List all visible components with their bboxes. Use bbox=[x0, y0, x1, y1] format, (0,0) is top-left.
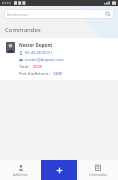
staticText: Total : bbox=[19, 64, 31, 69]
staticText: Rechercher bbox=[7, 12, 105, 17]
staticText: 06.45.28.00.01 bbox=[25, 50, 53, 55]
button[interactable]: Ajouter bbox=[41, 160, 77, 180]
staticText: 200€ bbox=[33, 64, 43, 69]
staticText: nestor@dupont.com bbox=[25, 57, 64, 62]
staticText: 120€ bbox=[53, 71, 63, 76]
button[interactable]: Commandes bbox=[77, 160, 118, 180]
staticText: Nestor Dupont bbox=[19, 42, 53, 48]
button[interactable]: Adhérents bbox=[0, 160, 41, 180]
staticText: Part d'adhérent : bbox=[19, 71, 51, 76]
staticText: Commandes bbox=[5, 26, 41, 34]
staticText: Commandes bbox=[89, 173, 107, 177]
staticText: Adhérents bbox=[13, 173, 28, 177]
button[interactable]: Nestor Dupont bbox=[0, 38, 118, 80]
button[interactable]: Rechercher bbox=[4, 9, 114, 19]
